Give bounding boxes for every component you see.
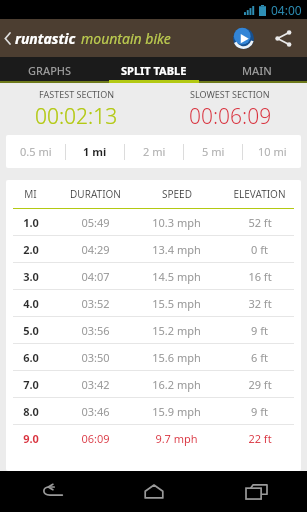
- other: Back: [3, 31, 12, 46]
- button[interactable]: GRAPHS: [0, 57, 100, 83]
- staticText: 03:46: [81, 404, 110, 419]
- button[interactable]: 4.0: [6, 290, 301, 316]
- button[interactable]: Open in Runtastic player: [225, 20, 261, 56]
- button[interactable]: 6.0: [6, 344, 301, 370]
- button[interactable]: FASTEST SECTION: [0, 83, 153, 135]
- staticText: 10 mi: [258, 144, 287, 159]
- staticText: 10.3 mph: [152, 215, 201, 230]
- button[interactable]: 9.0: [6, 425, 301, 451]
- staticText: 13.4 mph: [152, 242, 201, 257]
- button[interactable]: Share: [265, 20, 301, 56]
- staticText: 00:06:09: [189, 102, 272, 131]
- button[interactable]: 8.0: [6, 398, 301, 424]
- staticText: SLOWEST SECTION: [190, 88, 270, 100]
- button[interactable]: Home: [103, 471, 205, 512]
- staticText: SPEED: [162, 187, 192, 201]
- staticText: 1 mi: [83, 144, 107, 159]
- staticText: 22 ft: [248, 431, 272, 446]
- staticText: 32 ft: [248, 296, 272, 311]
- staticText: 2.0: [23, 242, 39, 257]
- staticText: DURATION: [70, 187, 121, 201]
- staticText: MAIN: [242, 63, 272, 78]
- staticText: 9.0: [23, 431, 39, 446]
- staticText: 3.0: [23, 269, 39, 284]
- button[interactable]: 2.0: [6, 236, 301, 262]
- button[interactable]: Recent apps: [205, 471, 307, 512]
- staticText: 6.0: [23, 350, 39, 365]
- staticText: 14.5 mph: [152, 269, 201, 284]
- staticText: MI: [24, 187, 37, 201]
- staticText: 00:02:13: [35, 102, 118, 131]
- button[interactable]: 1.0: [6, 209, 301, 235]
- staticText: 15.6 mph: [152, 350, 201, 365]
- staticText: 29 ft: [248, 377, 272, 392]
- button[interactable]: 5.0: [6, 317, 301, 343]
- button[interactable]: Back: [0, 471, 103, 512]
- staticText: 03:52: [81, 296, 110, 311]
- staticText: ELEVATION: [233, 187, 286, 201]
- button[interactable]: 0.5 mi: [6, 135, 65, 168]
- staticText: 0.5 mi: [20, 144, 52, 159]
- staticText: 05:49: [81, 215, 110, 230]
- staticText: 6 ft: [251, 350, 268, 365]
- staticText: GRAPHS: [28, 63, 72, 78]
- button[interactable]: 10 mi: [243, 135, 301, 168]
- staticText: 03:56: [81, 323, 110, 338]
- button[interactable]: 5 mi: [184, 135, 242, 168]
- button[interactable]: MAIN: [207, 57, 307, 83]
- staticText: 4.0: [23, 296, 39, 311]
- staticText: 5 mi: [202, 144, 225, 159]
- button[interactable]: 1 mi: [66, 135, 124, 168]
- staticText: 9 ft: [251, 404, 268, 419]
- staticText: 04:07: [81, 269, 110, 284]
- staticText: 7.0: [23, 377, 39, 392]
- button[interactable]: SLOWEST SECTION: [153, 83, 307, 135]
- staticText: mountain bike: [81, 29, 171, 48]
- staticText: 15.9 mph: [152, 404, 201, 419]
- staticText: 8.0: [23, 404, 39, 419]
- button[interactable]: 3.0: [6, 263, 301, 289]
- button[interactable]: 7.0: [6, 371, 301, 397]
- staticText: 04:00: [271, 2, 302, 18]
- staticText: 2 mi: [143, 144, 166, 159]
- button[interactable]: SPLIT TABLE: [100, 57, 207, 83]
- staticText: 06:09: [81, 431, 110, 446]
- staticText: 15.5 mph: [152, 296, 201, 311]
- button[interactable]: 2 mi: [125, 135, 183, 168]
- staticText: 1.0: [23, 215, 39, 230]
- staticText: 9 ft: [251, 323, 268, 338]
- staticText: 52 ft: [248, 215, 272, 230]
- staticText: 9.7 mph: [155, 431, 198, 446]
- staticText: runtastic: [15, 29, 76, 48]
- button[interactable]: Back: [0, 29, 171, 48]
- staticText: 0 ft: [251, 242, 268, 257]
- staticText: FASTEST SECTION: [39, 88, 115, 100]
- staticText: 16 ft: [248, 269, 272, 284]
- staticText: 03:42: [81, 377, 110, 392]
- staticText: SPLIT TABLE: [121, 63, 187, 78]
- staticText: 04:29: [81, 242, 110, 257]
- staticText: 5.0: [23, 323, 39, 338]
- staticText: 16.2 mph: [152, 377, 201, 392]
- staticText: 03:50: [81, 350, 110, 365]
- staticText: 15.2 mph: [152, 323, 201, 338]
